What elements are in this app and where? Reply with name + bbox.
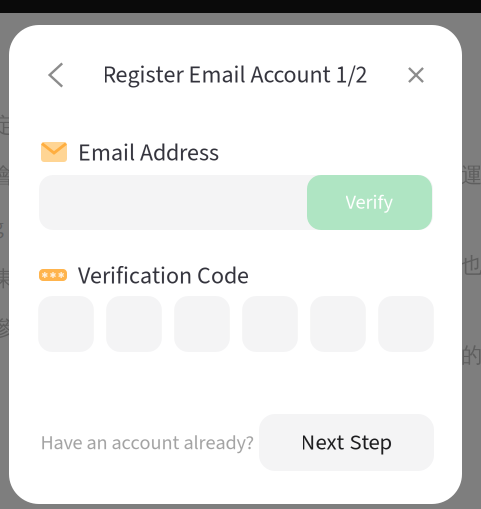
staticText: 參 xyxy=(0,315,14,342)
staticText: Verification Code xyxy=(78,259,249,293)
staticText: g xyxy=(0,212,4,242)
staticText: 運行 xyxy=(461,162,481,189)
staticText: Next Step xyxy=(300,426,392,459)
staticText: 會 xyxy=(0,162,14,189)
staticText: 也可 xyxy=(461,252,481,279)
button[interactable]: Close xyxy=(395,54,437,96)
button[interactable]: Verify xyxy=(307,175,432,230)
staticText: Email Address xyxy=(78,136,219,170)
staticText: Register Email Account 1/2 xyxy=(102,58,367,92)
staticText: 東 xyxy=(0,265,14,292)
button[interactable]: Email address field xyxy=(39,175,433,230)
button[interactable]: Have an account already? xyxy=(40,430,255,456)
button[interactable]: Back xyxy=(34,53,78,97)
staticText: Have an account already? xyxy=(40,429,254,457)
staticText: Verify xyxy=(345,188,393,217)
staticText: 定 xyxy=(0,112,14,139)
button[interactable]: Next Step xyxy=(259,414,434,471)
staticText: 的最 xyxy=(461,342,481,369)
